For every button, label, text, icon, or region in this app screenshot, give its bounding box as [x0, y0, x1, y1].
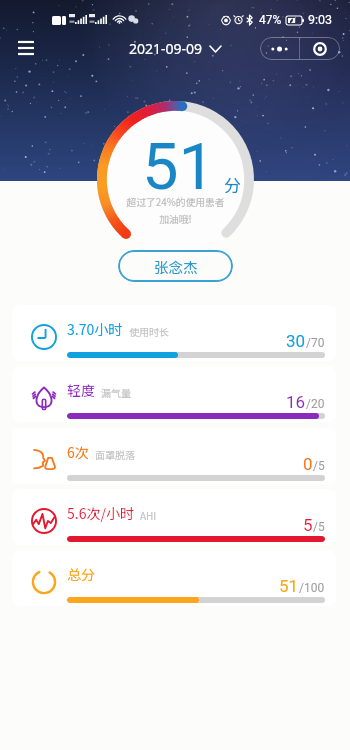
staticText: 2021-09-09 — [129, 39, 203, 58]
staticText: 面罩脱落 — [95, 447, 135, 461]
button[interactable]: 6次 — [12, 428, 336, 484]
staticText: 5 — [303, 515, 313, 535]
staticText: /100 — [299, 581, 325, 595]
staticText: 使用时长 — [129, 324, 169, 338]
staticText: 51 — [142, 129, 216, 205]
staticText: 3.70小时 — [67, 319, 123, 339]
button[interactable]: 轻度 — [12, 366, 336, 422]
staticText: 9:03 — [308, 12, 333, 27]
button[interactable]: Close app — [300, 37, 340, 60]
staticText: /70 — [306, 336, 325, 350]
staticText: /5 — [313, 459, 325, 473]
button[interactable]: More options — [260, 37, 299, 60]
staticText: AHI — [140, 508, 157, 522]
staticText: 漏气量 — [101, 385, 131, 399]
staticText: 51 — [279, 576, 299, 596]
staticText: /5 — [313, 520, 325, 534]
button[interactable]: 2021-09-09 — [123, 35, 227, 62]
button[interactable]: 5.6次/小时 — [12, 489, 336, 545]
button[interactable]: 3.70小时 — [12, 305, 336, 361]
staticText: 47% — [259, 13, 282, 27]
staticText: 30 — [286, 331, 306, 351]
staticText: 5.6次/小时 — [67, 503, 134, 523]
staticText: 0 — [303, 454, 313, 474]
button[interactable]: 总分 — [12, 550, 336, 606]
button[interactable]: 张念杰 — [118, 250, 233, 282]
staticText: 轻度 — [67, 380, 95, 400]
staticText: 总分 — [67, 564, 95, 584]
staticText: 分 — [224, 172, 241, 197]
button[interactable]: Menu — [9, 31, 43, 65]
staticText: 超过了24%的使用患者 加油哦! — [126, 195, 225, 226]
staticText: /20 — [306, 397, 325, 411]
staticText: 张念杰 — [154, 256, 198, 277]
staticText: 16 — [286, 392, 306, 412]
staticText: 6次 — [67, 442, 89, 462]
